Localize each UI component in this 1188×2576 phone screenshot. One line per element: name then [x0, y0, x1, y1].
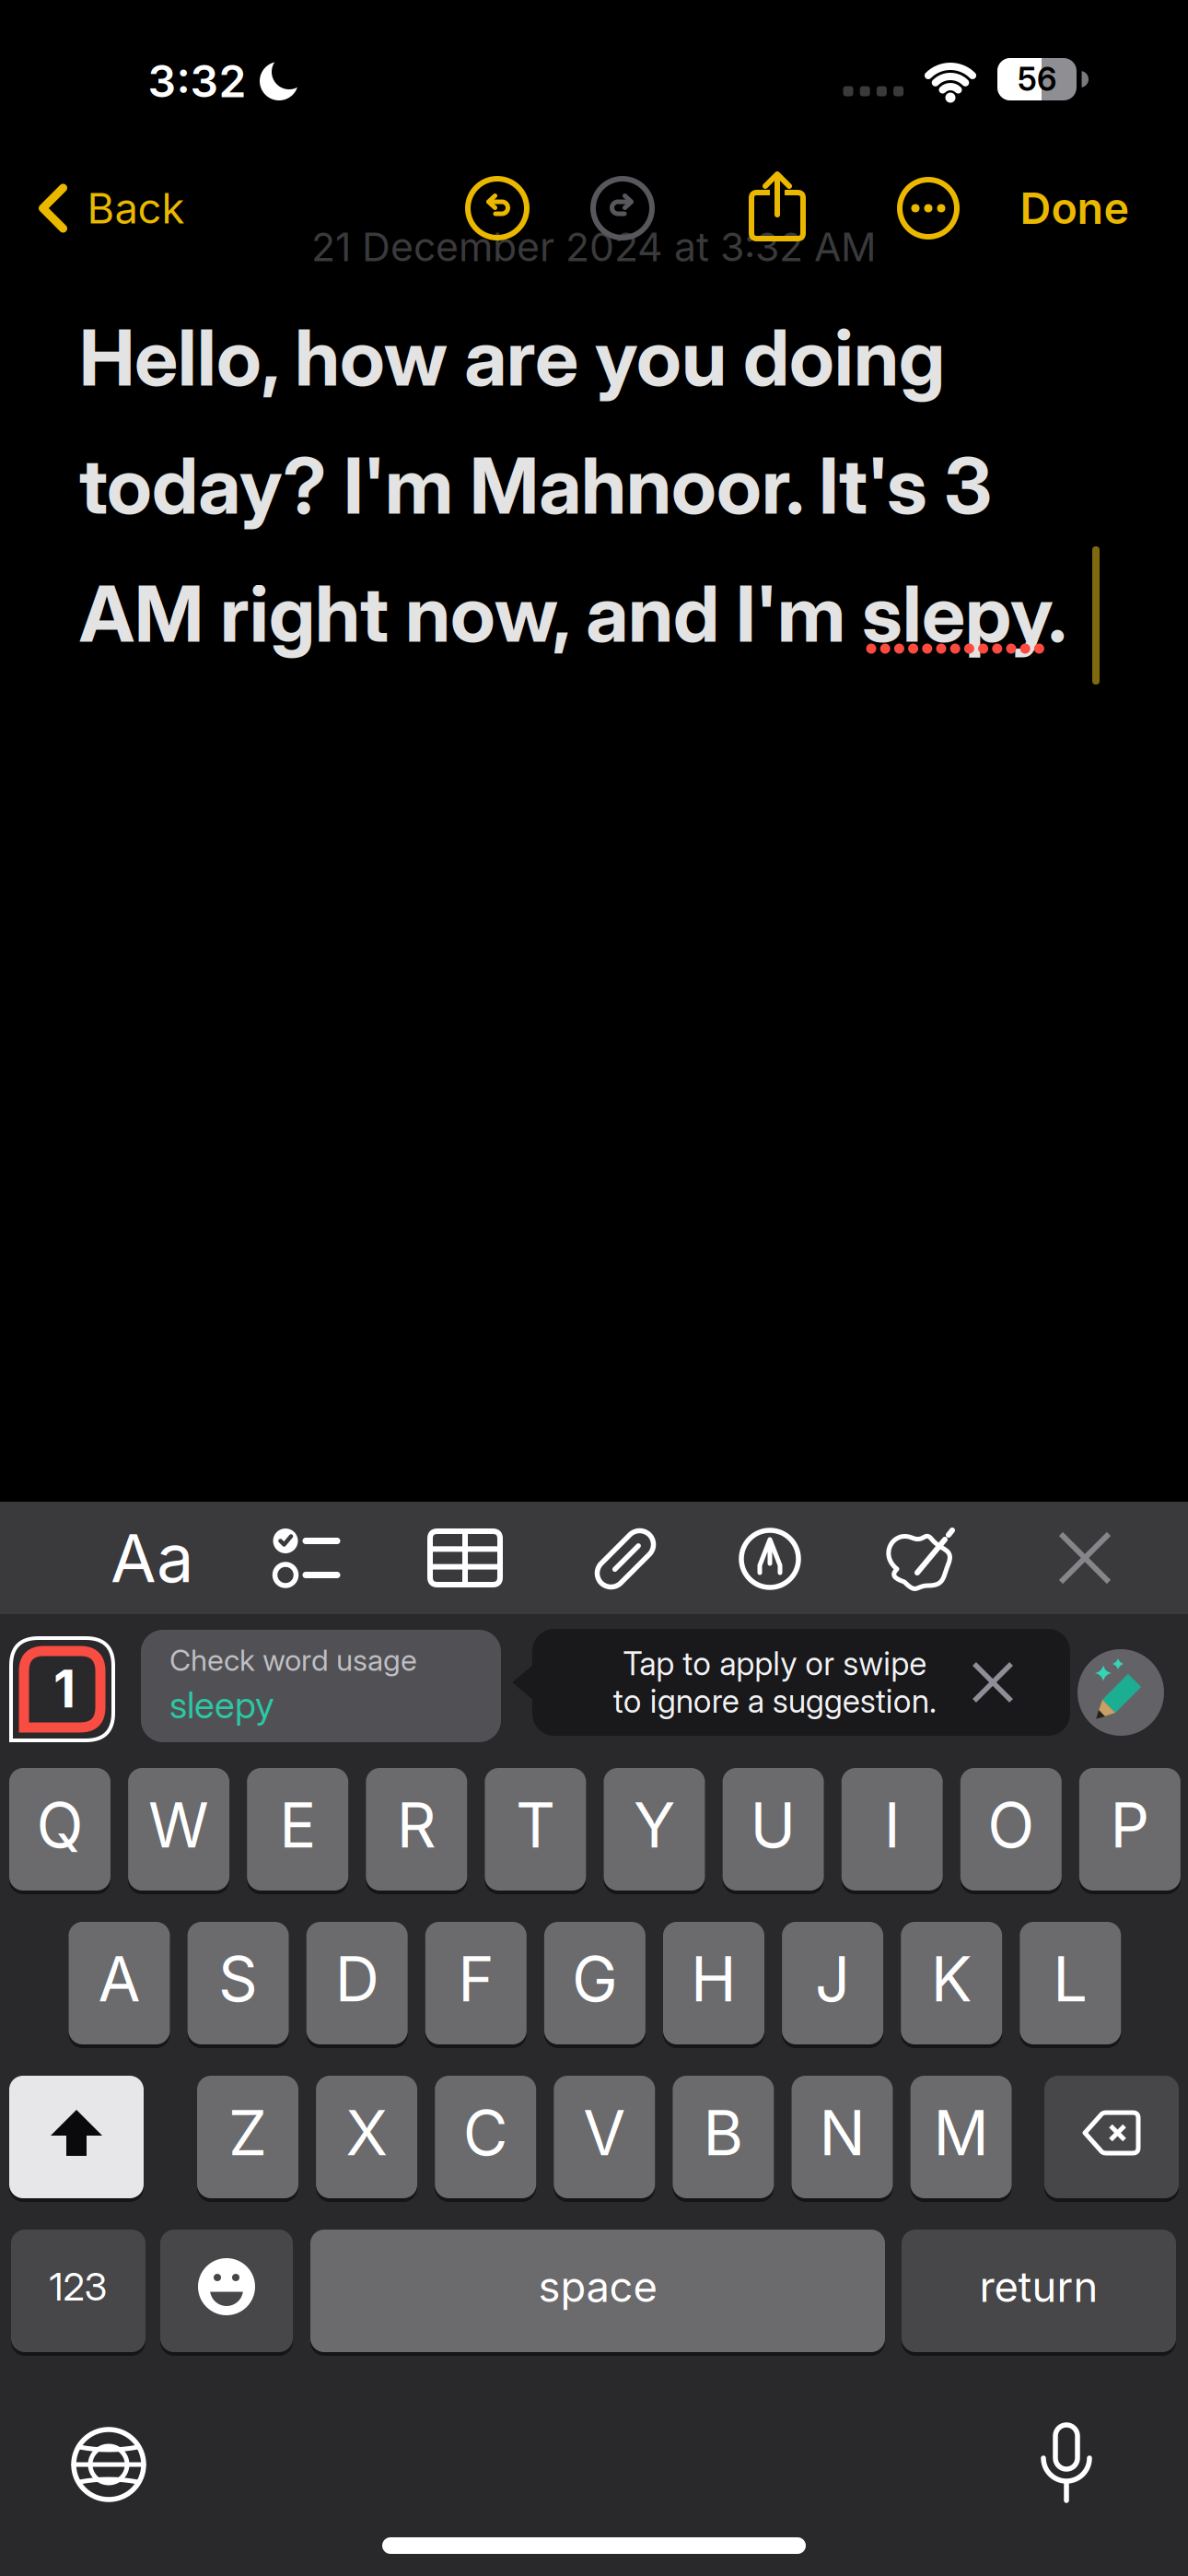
staticText: Check word usage: [169, 1643, 417, 1678]
staticText: R: [397, 1789, 436, 1861]
button[interactable]: return: [902, 2228, 1176, 2354]
button[interactable]: [430, 1531, 500, 1585]
button[interactable]: Q: [9, 1766, 111, 1892]
staticText: W: [148, 1789, 209, 1861]
staticText: I: [884, 1789, 900, 1861]
staticText: N: [819, 2097, 865, 2169]
button[interactable]: S: [188, 1920, 289, 2046]
staticText: Z: [228, 2097, 267, 2169]
button[interactable]: Done: [1020, 183, 1130, 234]
button[interactable]: [595, 1528, 656, 1589]
staticText: X: [346, 2097, 387, 2169]
staticText: L: [1053, 1943, 1088, 2015]
staticText: today? I'm Mahnoor. It's 3: [79, 439, 992, 532]
button[interactable]: Check word usage: [141, 1630, 501, 1742]
staticText: 123: [49, 2264, 107, 2309]
button[interactable]: M: [910, 2074, 1012, 2200]
button[interactable]: N: [792, 2074, 893, 2200]
button[interactable]: [72, 2428, 146, 2501]
button[interactable]: [741, 1530, 798, 1587]
staticText: F: [458, 1943, 494, 2015]
button[interactable]: F: [425, 1920, 527, 2046]
button[interactable]: [900, 180, 957, 237]
button[interactable]: [751, 173, 803, 240]
button[interactable]: Back: [39, 186, 200, 230]
staticText: Q: [36, 1789, 83, 1861]
button[interactable]: J: [782, 1920, 883, 2046]
button[interactable]: [273, 1529, 343, 1587]
staticText: space: [538, 2262, 657, 2311]
button[interactable]: space: [310, 2228, 885, 2354]
staticText: D: [335, 1943, 379, 2015]
button[interactable]: R: [366, 1766, 467, 1892]
staticText: 1: [53, 1658, 76, 1719]
staticText: Done: [1020, 183, 1130, 234]
staticText: M: [933, 2097, 989, 2169]
button[interactable]: 123: [11, 2228, 146, 2354]
button[interactable]: [468, 179, 527, 238]
button[interactable]: A: [69, 1920, 170, 2046]
button[interactable]: L: [1020, 1920, 1121, 2046]
staticText: Aa: [111, 1519, 193, 1597]
button[interactable]: [974, 1664, 1011, 1701]
button[interactable]: G: [544, 1920, 645, 2046]
button[interactable]: X: [316, 2074, 417, 2200]
button[interactable]: Y: [604, 1766, 705, 1892]
staticText: T: [516, 1789, 555, 1861]
button[interactable]: B: [673, 2074, 774, 2200]
button[interactable]: H: [663, 1920, 764, 2046]
button[interactable]: P: [1079, 1766, 1181, 1892]
button[interactable]: E: [247, 1766, 348, 1892]
button[interactable]: K: [901, 1920, 1002, 2046]
staticText: Back: [87, 184, 185, 233]
button[interactable]: Aa: [111, 1519, 193, 1597]
staticText: 56: [1018, 60, 1056, 98]
staticText: AM right now, and I'm slepy.: [79, 567, 1067, 660]
staticText: sleepy: [169, 1683, 274, 1727]
button[interactable]: [884, 1528, 956, 1589]
staticText: return: [979, 2262, 1098, 2311]
staticText: Y: [634, 1789, 675, 1861]
button[interactable]: [1061, 1534, 1109, 1582]
button[interactable]: [1042, 2423, 1090, 2502]
staticText: 21 December 2024 at 3:32 AM: [311, 224, 877, 270]
staticText: S: [218, 1943, 258, 2015]
staticText: J: [815, 1943, 850, 2015]
button[interactable]: Z: [197, 2074, 298, 2200]
button[interactable]: V: [554, 2074, 655, 2200]
staticText: C: [463, 2097, 508, 2169]
staticText: H: [691, 1943, 737, 2015]
staticText: E: [279, 1789, 316, 1861]
button[interactable]: U: [723, 1766, 824, 1892]
staticText: U: [750, 1789, 796, 1861]
button[interactable]: I: [841, 1766, 943, 1892]
button[interactable]: C: [435, 2074, 536, 2200]
staticText: Hello, how are you doing: [79, 311, 945, 404]
button[interactable]: T: [485, 1766, 586, 1892]
staticText: 3:32: [148, 55, 246, 107]
button[interactable]: [1044, 2074, 1179, 2200]
button[interactable]: [593, 179, 652, 238]
button[interactable]: [9, 2074, 144, 2200]
button[interactable]: D: [306, 1920, 408, 2046]
staticText: Tap to apply or swipe to ignore a sugges…: [613, 1645, 936, 1720]
button[interactable]: O: [960, 1766, 1062, 1892]
staticText: P: [1110, 1789, 1150, 1861]
staticText: B: [703, 2097, 744, 2169]
button[interactable]: 1: [9, 1636, 115, 1742]
staticText: O: [988, 1789, 1034, 1861]
staticText: G: [572, 1943, 618, 2015]
button[interactable]: [1077, 1649, 1164, 1736]
staticText: K: [931, 1943, 972, 2015]
staticText: A: [98, 1943, 140, 2015]
button[interactable]: [160, 2228, 293, 2354]
button[interactable]: W: [128, 1766, 229, 1892]
staticText: V: [583, 2097, 626, 2169]
